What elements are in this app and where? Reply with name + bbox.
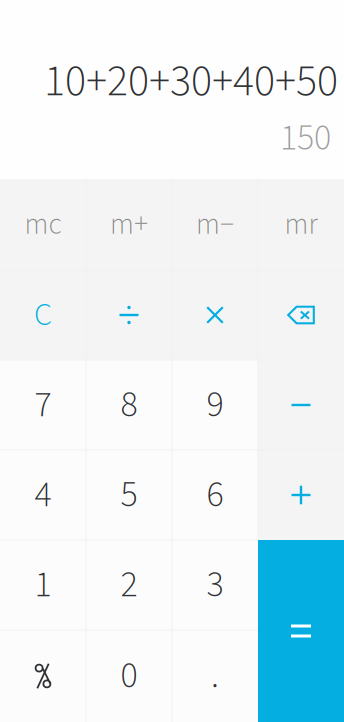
staticText: 9 (206, 379, 223, 431)
staticText: 6 (206, 469, 223, 521)
staticText: 3 (206, 559, 223, 611)
button[interactable]: Delete (258, 270, 344, 360)
button[interactable]: 3 (172, 540, 258, 630)
staticText: mc (24, 204, 61, 245)
staticText: 5 (120, 469, 137, 521)
staticText: 0 (120, 650, 137, 702)
staticText: 150 (280, 113, 331, 164)
button[interactable]: m− (172, 179, 258, 270)
button[interactable]: Plus (258, 450, 344, 540)
button[interactable]: mc (0, 179, 86, 270)
button[interactable]: 9 (172, 360, 258, 450)
button[interactable]: m+ (86, 179, 172, 270)
staticText: 10+20+30+40+50 (44, 50, 338, 113)
button[interactable]: Percent (0, 630, 86, 722)
button[interactable]: 5 (86, 450, 172, 540)
button[interactable]: . (172, 630, 258, 722)
staticText: 7 (34, 379, 51, 431)
staticText: 2 (120, 559, 137, 611)
staticText: 1 (34, 559, 51, 611)
button[interactable]: 4 (0, 450, 86, 540)
staticText: mr (284, 204, 317, 245)
staticText: m− (196, 204, 234, 245)
button[interactable]: 8 (86, 360, 172, 450)
button[interactable]: C (0, 270, 86, 360)
staticText: . (211, 650, 219, 702)
button[interactable]: 2 (86, 540, 172, 630)
staticText: 8 (120, 379, 137, 431)
button[interactable]: Equals (258, 540, 344, 722)
button[interactable]: 6 (172, 450, 258, 540)
button[interactable]: Multiply (172, 270, 258, 360)
staticText: C (34, 292, 52, 338)
button[interactable]: 7 (0, 360, 86, 450)
button[interactable]: Minus (258, 360, 344, 450)
button[interactable]: 1 (0, 540, 86, 630)
button[interactable]: Divide (86, 270, 172, 360)
button[interactable]: mr (258, 179, 344, 270)
staticText: 4 (34, 469, 51, 521)
staticText: m+ (110, 204, 148, 245)
button[interactable]: 0 (86, 630, 172, 722)
